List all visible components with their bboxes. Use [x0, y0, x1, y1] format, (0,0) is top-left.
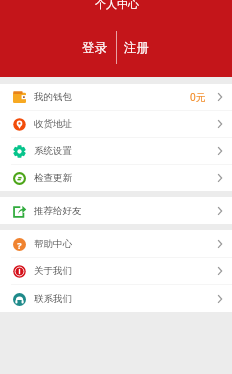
button[interactable]: 系统设置 — [0, 138, 232, 164]
staticText: 系统设置 — [34, 145, 72, 157]
staticText: 个人中心 — [95, 0, 139, 11]
button[interactable]: 检查更新 — [0, 165, 232, 191]
staticText: 关于我们 — [34, 265, 72, 277]
button[interactable]: 联系我们 — [0, 285, 232, 312]
staticText: 我的钱包 — [34, 91, 72, 103]
staticText: 登录 — [82, 40, 107, 56]
staticText: 检查更新 — [34, 172, 72, 184]
staticText: 帮助中心 — [34, 238, 72, 250]
staticText: ? — [17, 239, 22, 251]
staticText: 联系我们 — [34, 293, 72, 305]
button[interactable]: ? — [0, 230, 232, 257]
button[interactable]: 我的钱包 — [0, 84, 232, 110]
button[interactable]: 注册 — [117, 31, 155, 64]
staticText: 0元 — [190, 90, 206, 104]
button[interactable]: 登录 — [72, 31, 116, 64]
button[interactable]: 推荐给好友 — [0, 197, 232, 224]
staticText: 收货地址 — [34, 118, 72, 130]
button[interactable]: 收货地址 — [0, 111, 232, 137]
staticText: 注册 — [124, 40, 149, 56]
staticText: 推荐给好友 — [34, 205, 82, 217]
button[interactable]: 关于我们 — [0, 258, 232, 284]
